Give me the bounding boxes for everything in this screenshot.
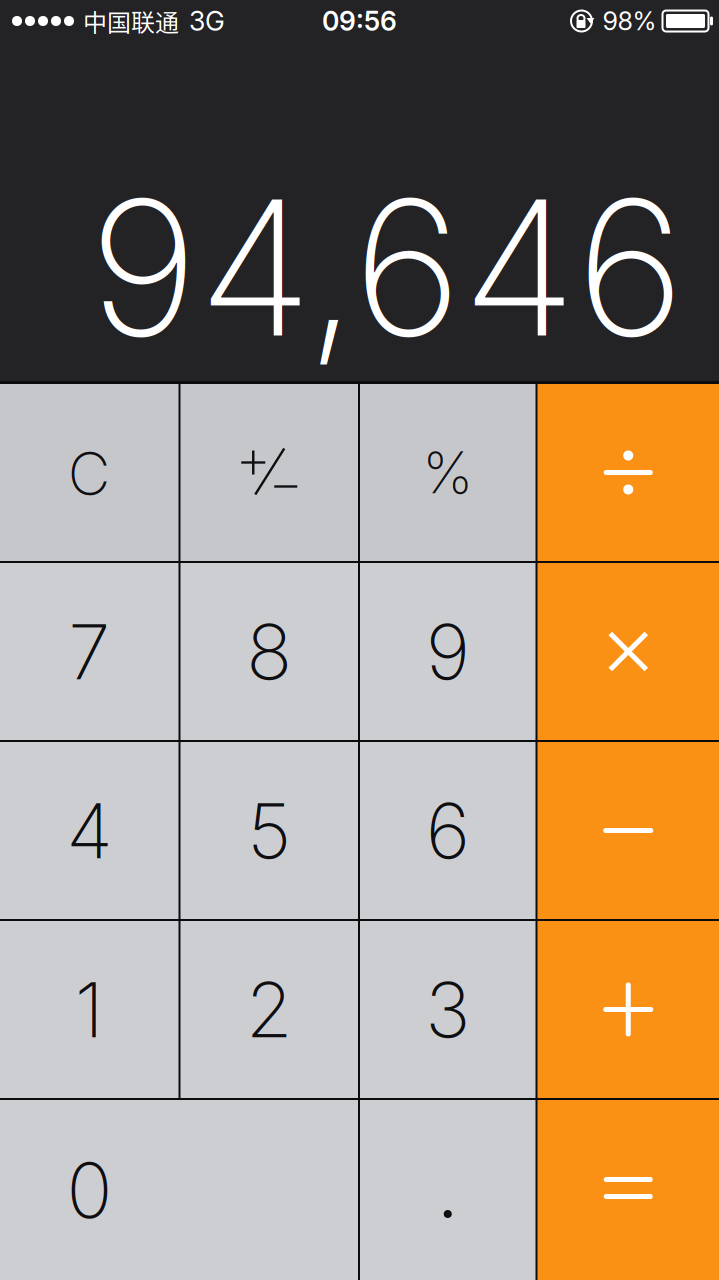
button[interactable]: 9 [360, 563, 535, 740]
button[interactable]: 1 [0, 921, 178, 1098]
button[interactable]: Divide [537, 384, 719, 561]
button[interactable]: Zero [0, 1100, 358, 1280]
button[interactable]: 6 [360, 742, 535, 919]
button[interactable]: Plus minus [180, 384, 358, 561]
button[interactable]: Decimal point [360, 1100, 535, 1280]
button[interactable]: Equals [537, 1100, 719, 1280]
button[interactable]: 8 [180, 563, 358, 740]
staticText: 94,646 [89, 155, 685, 380]
button[interactable]: Percent [360, 384, 535, 561]
button[interactable]: Add [537, 921, 719, 1098]
staticText: C [68, 438, 111, 509]
staticText: 98% [602, 6, 656, 36]
staticText: 1 [75, 963, 104, 1055]
button[interactable]: Clear [0, 384, 178, 561]
button[interactable]: 3 [360, 921, 535, 1098]
staticText: 09:56 [322, 5, 397, 37]
staticText: 8 [246, 605, 292, 697]
button[interactable]: 5 [180, 742, 358, 919]
staticText: 4 [66, 784, 112, 876]
button[interactable]: Subtract [537, 742, 719, 919]
staticText: 6 [426, 784, 470, 876]
staticText: 7 [68, 605, 110, 697]
button[interactable]: Multiply [537, 563, 719, 740]
staticText: 0 [66, 1144, 112, 1236]
staticText: 2 [246, 963, 293, 1055]
button[interactable]: 2 [180, 921, 358, 1098]
staticText: % [422, 438, 473, 507]
staticText: 9 [426, 605, 470, 697]
staticText: 3 [425, 963, 470, 1055]
staticText: 中国联通 [83, 4, 179, 38]
button[interactable]: 7 [0, 563, 178, 740]
staticText: 3G [189, 5, 225, 37]
staticText: 5 [247, 784, 291, 876]
button[interactable]: 4 [0, 742, 178, 919]
